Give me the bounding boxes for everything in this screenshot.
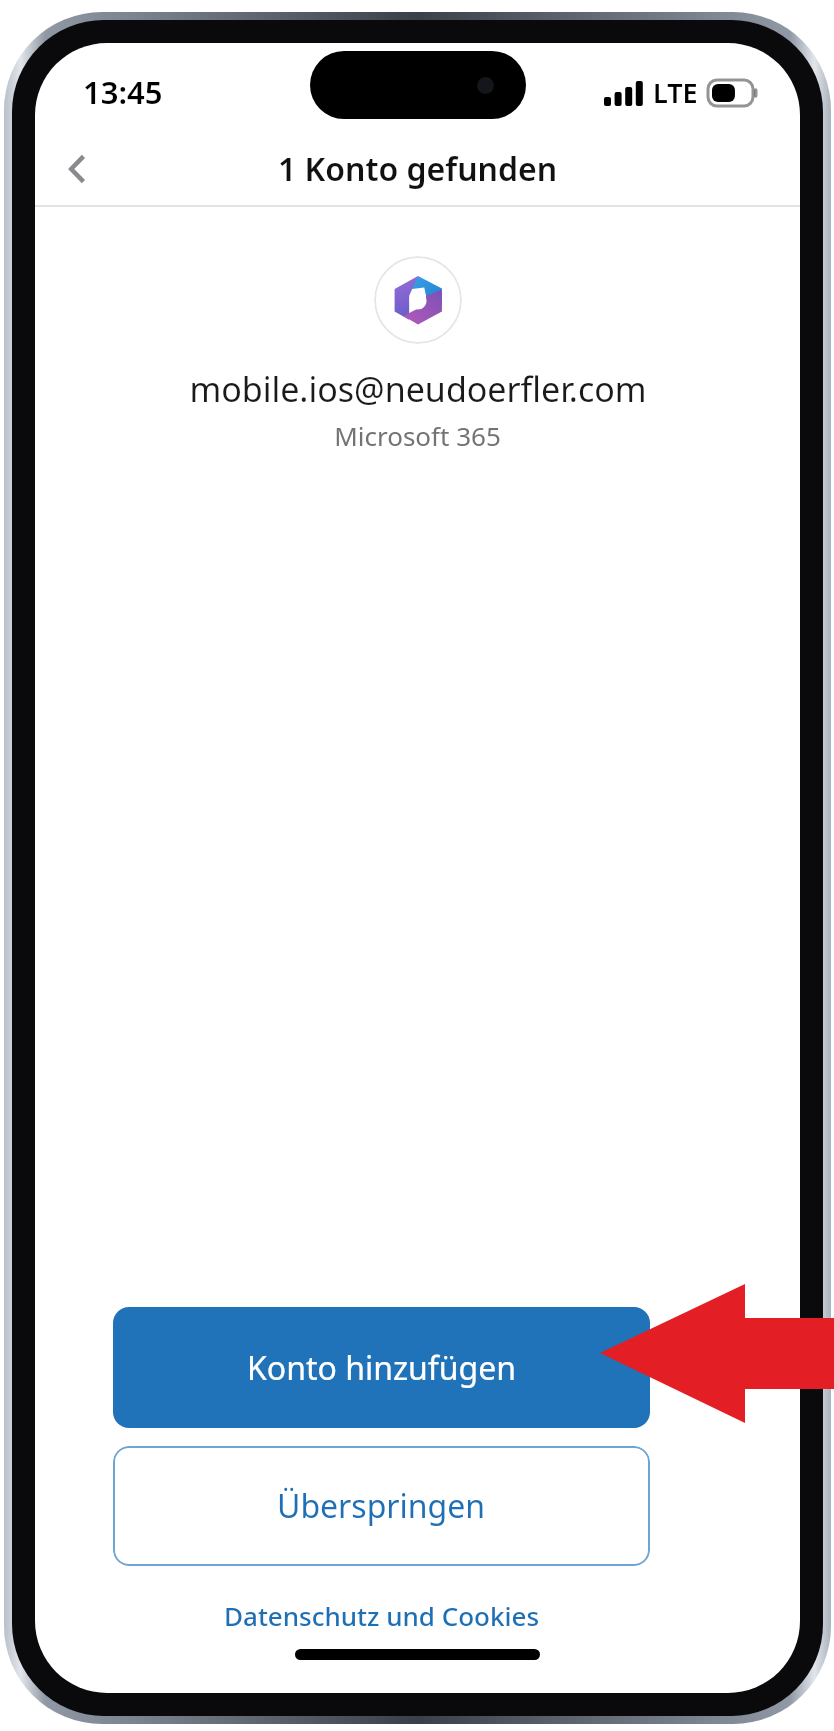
button[interactable]: Zurück: [35, 133, 121, 205]
staticText: LTE: [653, 74, 698, 111]
staticText: Konto hinzufügen: [247, 1346, 517, 1390]
staticText: Microsoft 365: [334, 418, 501, 453]
staticText: Überspringen: [277, 1484, 486, 1528]
button[interactable]: Konto hinzufügen: [113, 1307, 650, 1428]
button[interactable]: Überspringen: [113, 1446, 650, 1566]
button[interactable]: Datenschutz und Cookies: [216, 1592, 548, 1639]
staticText: 13:45: [83, 71, 163, 113]
staticText: 1 Konto gefunden: [278, 147, 558, 191]
staticText: Datenschutz und Cookies: [224, 1598, 540, 1633]
staticText: mobile.ios@neudoerfler.com: [189, 366, 647, 412]
